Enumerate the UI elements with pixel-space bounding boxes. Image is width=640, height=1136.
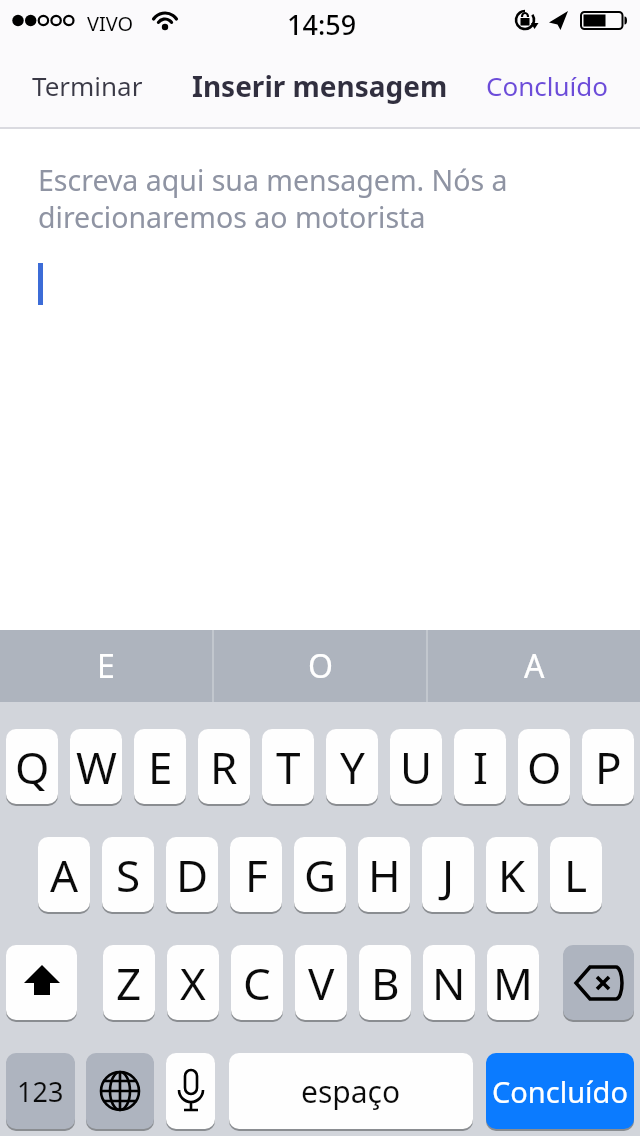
staticText: J xyxy=(442,845,455,905)
staticText: X xyxy=(180,953,206,1013)
staticText: R xyxy=(210,737,238,797)
button[interactable]: K xyxy=(486,837,538,912)
button[interactable]: E xyxy=(134,729,186,804)
button[interactable]: M xyxy=(487,945,539,1020)
staticText: 14:59 xyxy=(287,6,357,43)
staticText: L xyxy=(564,845,588,905)
button[interactable]: J xyxy=(422,837,474,912)
button[interactable]: Concluído xyxy=(486,1053,634,1129)
button[interactable]: N xyxy=(423,945,475,1020)
staticText: T xyxy=(276,737,301,797)
staticText: Y xyxy=(340,737,365,797)
staticText: A xyxy=(524,644,545,688)
staticText: B xyxy=(371,953,400,1013)
button[interactable] xyxy=(6,945,77,1020)
button[interactable]: O xyxy=(214,630,426,702)
button[interactable]: Terminar xyxy=(20,56,155,115)
button[interactable]: X xyxy=(167,945,219,1020)
staticText: E xyxy=(97,644,115,688)
staticText: H xyxy=(368,845,401,905)
button[interactable]: P xyxy=(582,729,634,804)
button[interactable]: H xyxy=(358,837,410,912)
button[interactable]: A xyxy=(428,630,640,702)
staticText: G xyxy=(304,845,337,905)
staticText: Escreva aqui sua mensagem. Nós a direcio… xyxy=(38,161,508,236)
staticText: P xyxy=(595,737,622,797)
staticText: Inserir mensagem xyxy=(192,67,448,105)
staticText: K xyxy=(498,845,526,905)
button[interactable]: F xyxy=(230,837,282,912)
button[interactable]: Concluído xyxy=(476,58,618,113)
button[interactable]: E xyxy=(0,630,212,702)
button[interactable]: D xyxy=(166,837,218,912)
button[interactable]: V xyxy=(295,945,347,1020)
staticText: W xyxy=(76,737,117,797)
button[interactable] xyxy=(166,1053,215,1129)
staticText: D xyxy=(176,845,209,905)
staticText: M xyxy=(493,953,533,1013)
staticText: Q xyxy=(15,737,50,797)
button[interactable]: C xyxy=(231,945,283,1020)
button[interactable]: espaço xyxy=(229,1053,473,1129)
button[interactable]: A xyxy=(38,837,90,912)
staticText: C xyxy=(243,953,271,1013)
button[interactable]: Z xyxy=(103,945,155,1020)
button[interactable]: W xyxy=(70,729,122,804)
button[interactable]: Q xyxy=(6,729,58,804)
button[interactable]: O xyxy=(518,729,570,804)
staticText: Concluído xyxy=(492,1072,628,1111)
staticText: VIVO xyxy=(87,10,134,37)
button[interactable]: B xyxy=(359,945,411,1020)
staticText: I xyxy=(473,737,488,797)
staticText: U xyxy=(400,737,433,797)
button[interactable]: R xyxy=(198,729,250,804)
staticText: O xyxy=(308,644,333,688)
button[interactable] xyxy=(563,945,634,1020)
staticText: espaço xyxy=(301,1071,401,1112)
button[interactable]: G xyxy=(294,837,346,912)
staticText: N xyxy=(432,953,466,1013)
button[interactable]: S xyxy=(102,837,154,912)
button[interactable]: U xyxy=(390,729,442,804)
staticText: Terminar xyxy=(32,68,143,103)
staticText: E xyxy=(148,737,173,797)
staticText: O xyxy=(527,737,562,797)
staticText: Concluído xyxy=(486,68,608,103)
staticText: F xyxy=(245,845,268,905)
button[interactable]: 123 xyxy=(6,1053,75,1129)
button[interactable]: T xyxy=(262,729,314,804)
staticText: Z xyxy=(116,953,142,1013)
button[interactable] xyxy=(86,1053,154,1129)
button[interactable]: Y xyxy=(326,729,378,804)
button[interactable]: I xyxy=(454,729,506,804)
staticText: S xyxy=(116,845,141,905)
staticText: 123 xyxy=(17,1073,64,1110)
staticText: A xyxy=(50,845,79,905)
button[interactable]: L xyxy=(550,837,602,912)
staticText: V xyxy=(308,953,335,1013)
